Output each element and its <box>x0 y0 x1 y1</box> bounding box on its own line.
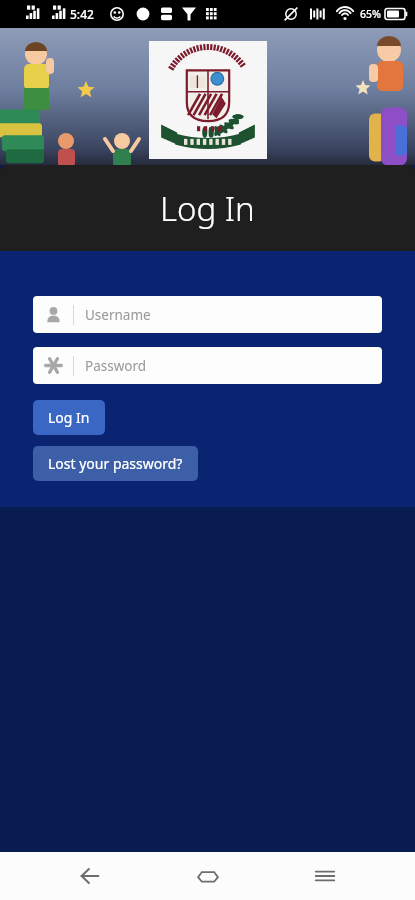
staticText: Log In <box>160 186 255 231</box>
button[interactable]: Username <box>33 296 382 333</box>
staticText: 5:42 <box>70 6 94 22</box>
staticText: Log In <box>48 408 90 427</box>
button[interactable]: Home <box>180 852 236 900</box>
button[interactable]: Log In <box>33 400 105 435</box>
staticText: Password <box>85 357 147 375</box>
button[interactable]: Back <box>62 852 118 900</box>
staticText: Lost your password? <box>48 454 183 473</box>
button[interactable]: Lost your password? <box>33 446 198 481</box>
staticText: Username <box>85 306 151 324</box>
button[interactable]: Recent apps <box>297 852 353 900</box>
button[interactable]: Password <box>33 347 382 384</box>
staticText: 65% <box>360 7 381 21</box>
